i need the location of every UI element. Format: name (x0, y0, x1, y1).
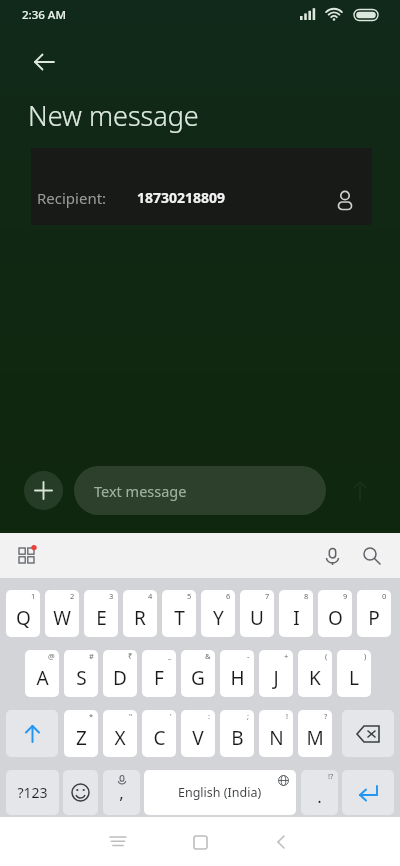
button[interactable]: 7 (240, 590, 274, 637)
staticText: ₹ (128, 651, 133, 661)
staticText: 6 (226, 591, 231, 601)
button[interactable]: Enter (342, 770, 394, 815)
button[interactable]: Home (178, 820, 222, 864)
button[interactable]: Back (26, 44, 62, 80)
staticText: Z (76, 725, 87, 751)
staticText: F (154, 665, 164, 691)
staticText: 0 (382, 591, 387, 601)
staticText: ? (324, 711, 328, 721)
staticText: 18730218809 (137, 188, 226, 207)
other: Shift (23, 724, 42, 743)
button[interactable]: Search (356, 540, 388, 572)
staticText: K (309, 665, 321, 691)
button[interactable]: ? (298, 710, 332, 757)
staticText: & (205, 651, 211, 661)
button[interactable]: ( (298, 650, 332, 697)
button[interactable]: Backspace (342, 710, 394, 757)
staticText: ; (247, 711, 250, 721)
button[interactable]: # (64, 650, 98, 697)
staticText: Q (16, 605, 31, 631)
staticText: 9 (343, 591, 348, 601)
button[interactable]: 1 (6, 590, 40, 637)
staticText: + (284, 651, 289, 661)
staticText: M (306, 725, 324, 751)
button[interactable]: + (259, 650, 293, 697)
button[interactable]: - (220, 650, 254, 697)
button[interactable]: English (India) (144, 770, 296, 815)
button[interactable]: Emoji (63, 770, 98, 815)
staticText: 2:36 AM (22, 7, 66, 23)
staticText: R (134, 605, 146, 631)
staticText: X (114, 725, 126, 751)
staticText: Y (213, 605, 224, 631)
staticText: 7 (265, 591, 270, 601)
staticText: English (India) (178, 784, 262, 801)
button[interactable]: 4 (123, 590, 157, 637)
button[interactable]: ' (142, 710, 176, 757)
staticText: 5 (187, 591, 192, 601)
button[interactable]: 6 (201, 590, 235, 637)
staticText: - (247, 651, 250, 661)
button[interactable]: " (103, 710, 137, 757)
button[interactable]: ₹ (103, 650, 137, 697)
button[interactable]: !? (301, 770, 338, 815)
staticText: 1 (31, 591, 36, 601)
staticText: ! (286, 711, 289, 721)
staticText: * (89, 711, 94, 721)
button[interactable]: ! (259, 710, 293, 757)
staticText: !? (328, 771, 334, 781)
button[interactable]: 5 (162, 590, 196, 637)
staticText: S (76, 665, 87, 691)
staticText: B (231, 725, 244, 751)
staticText: P (368, 605, 380, 631)
staticText: D (113, 665, 127, 691)
staticText: ( (325, 651, 328, 661)
button[interactable]: _ (142, 650, 176, 697)
button[interactable]: @ (25, 650, 59, 697)
staticText: 8 (304, 591, 309, 601)
staticText: O (328, 605, 343, 631)
staticText: 3 (109, 591, 114, 601)
button[interactable]: Toolbar apps (12, 540, 44, 572)
staticText: : (208, 711, 211, 721)
button[interactable]: 9 (318, 590, 352, 637)
button[interactable]: 8 (279, 590, 313, 637)
staticText: I (293, 605, 300, 631)
button[interactable]: ?123 (6, 770, 59, 815)
staticText: C (153, 725, 166, 751)
staticText: " (129, 711, 133, 721)
button[interactable]: Pick contact (328, 183, 362, 217)
staticText: N (269, 725, 284, 751)
button[interactable]: Add attachment (24, 471, 63, 510)
button[interactable]: & (181, 650, 215, 697)
staticText: . (317, 785, 322, 808)
staticText: New message (28, 97, 199, 134)
button[interactable]: Recipient: (31, 148, 372, 225)
other: Enter (357, 782, 379, 804)
button[interactable]: ; (220, 710, 254, 757)
button[interactable]: Recents (96, 820, 140, 864)
staticText: _ (168, 651, 172, 661)
staticText: ' (170, 711, 172, 721)
button[interactable]: Text message (74, 466, 326, 515)
staticText: E (96, 605, 107, 631)
staticText: , (119, 781, 124, 804)
button[interactable]: * (64, 710, 98, 757)
staticText: @ (48, 651, 55, 661)
staticText: Text message (94, 481, 187, 501)
button[interactable]: 3 (84, 590, 118, 637)
other: Emoji (71, 783, 90, 802)
button[interactable]: Voice input (316, 540, 348, 572)
button[interactable]: : (181, 710, 215, 757)
button[interactable]: Shift (6, 710, 58, 757)
button[interactable]: 0 (357, 590, 391, 637)
staticText: J (273, 665, 279, 691)
staticText: 2 (70, 591, 75, 601)
button[interactable]: Back (260, 820, 304, 864)
button[interactable]: , (103, 770, 140, 815)
staticText: A (36, 665, 49, 691)
staticText: Recipient: (37, 188, 107, 208)
button[interactable]: ) (337, 650, 371, 697)
button[interactable]: 2 (45, 590, 79, 637)
